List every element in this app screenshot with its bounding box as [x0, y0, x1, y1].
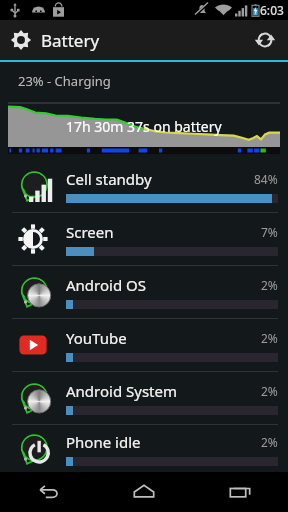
staticText: Phone idle [66, 432, 261, 452]
staticText: Android System [66, 381, 261, 401]
button[interactable]: Phone idle [0, 425, 288, 472]
staticText: Android OS [66, 275, 261, 295]
staticText: 2% [261, 330, 278, 346]
button[interactable]: Screen [0, 213, 288, 265]
staticText: 84% [254, 171, 278, 187]
staticText: 23% - Charging [18, 72, 111, 90]
button[interactable]: Refresh [242, 20, 288, 60]
button[interactable]: Battery [0, 20, 242, 60]
button[interactable]: Recent apps [192, 472, 288, 512]
button[interactable]: Android OS [0, 266, 288, 318]
staticText: 7% [261, 224, 278, 240]
staticText: Screen [66, 222, 261, 242]
button[interactable]: Cell standby [0, 160, 288, 212]
staticText: 2% [261, 383, 278, 399]
staticText: Cell standby [66, 169, 254, 189]
staticText: 2% [261, 434, 278, 450]
button[interactable]: Home [96, 472, 192, 512]
staticText: Battery [41, 29, 100, 52]
staticText: YouTube [66, 328, 261, 348]
button[interactable]: YouTube [0, 319, 288, 371]
button[interactable]: Back [0, 472, 96, 512]
staticText: 17h 30m 37s on battery [66, 117, 222, 136]
staticText: 6:03 [260, 2, 284, 18]
button[interactable]: Android System [0, 372, 288, 424]
staticText: 2% [261, 277, 278, 293]
